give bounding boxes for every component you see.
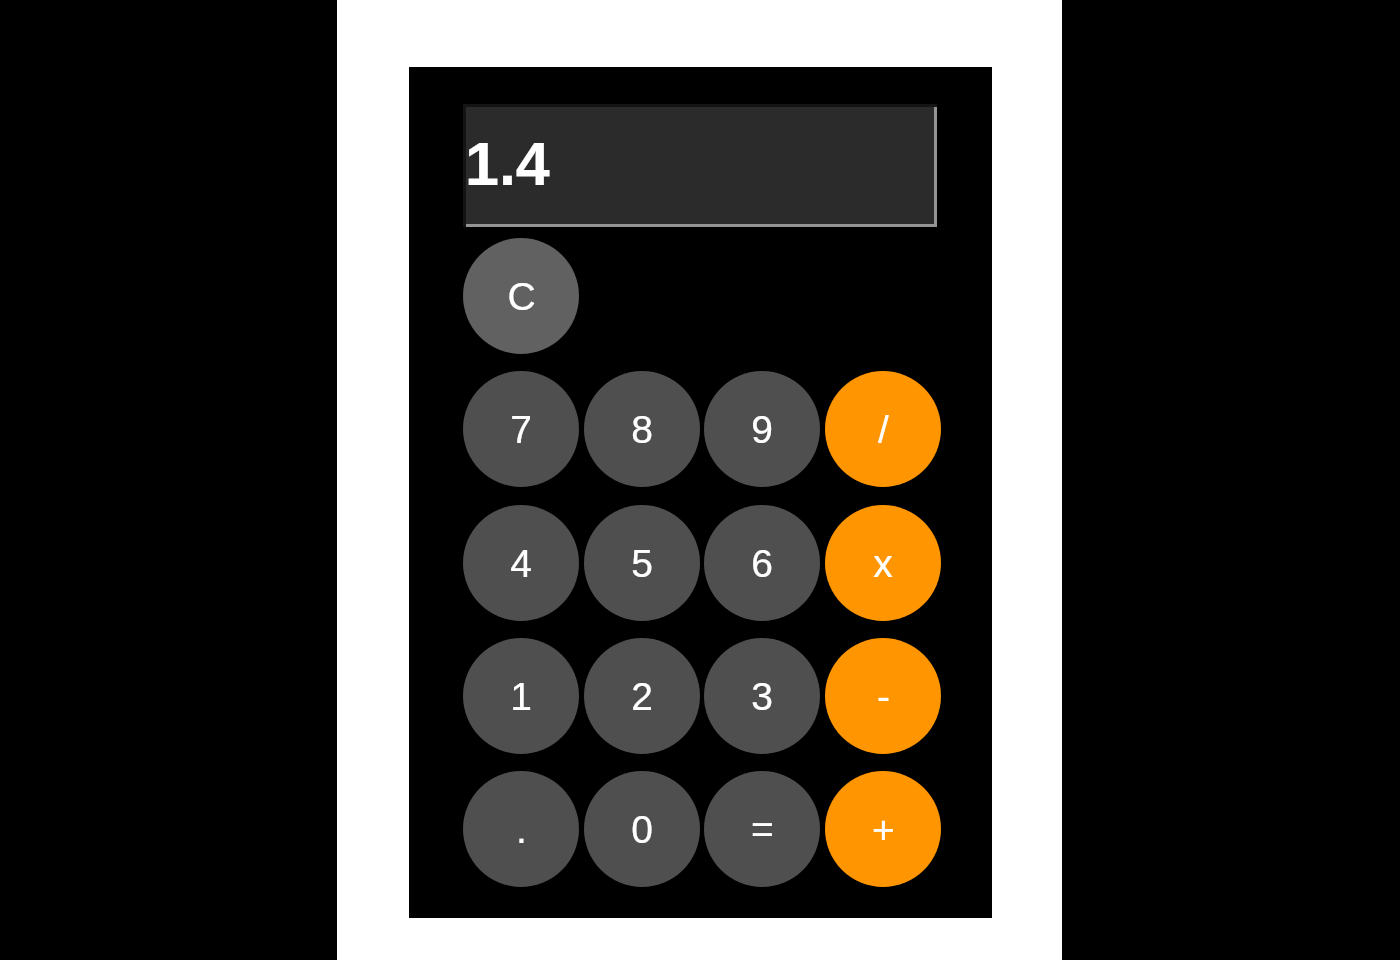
button[interactable]: - xyxy=(825,638,941,754)
staticText: 1.4 xyxy=(465,130,550,198)
button[interactable]: = xyxy=(704,771,820,887)
staticText: 0 xyxy=(631,808,653,852)
staticText: 9 xyxy=(751,408,773,452)
staticText: / xyxy=(878,408,889,452)
staticText: C xyxy=(507,275,536,319)
staticText: x xyxy=(873,542,893,586)
button[interactable]: x xyxy=(825,505,941,621)
button[interactable]: C xyxy=(463,238,579,354)
staticText: . xyxy=(516,808,527,852)
staticText: 2 xyxy=(631,675,653,719)
staticText: 7 xyxy=(510,408,532,452)
button[interactable]: / xyxy=(825,371,941,487)
button[interactable]: 9 xyxy=(704,371,820,487)
button[interactable]: 1 xyxy=(463,638,579,754)
staticText: 5 xyxy=(631,542,653,586)
button[interactable]: 6 xyxy=(704,505,820,621)
staticText: 6 xyxy=(751,542,773,586)
staticText: 3 xyxy=(751,675,773,719)
button[interactable]: + xyxy=(825,771,941,887)
button[interactable]: 7 xyxy=(463,371,579,487)
button[interactable]: 2 xyxy=(584,638,700,754)
button[interactable]: . xyxy=(463,771,579,887)
button[interactable]: 4 xyxy=(463,505,579,621)
staticText: 8 xyxy=(631,408,653,452)
staticText: + xyxy=(872,808,895,852)
button[interactable]: 5 xyxy=(584,505,700,621)
staticText: = xyxy=(751,808,774,852)
staticText: 1 xyxy=(510,675,532,719)
button[interactable]: 0 xyxy=(584,771,700,887)
button[interactable]: 8 xyxy=(584,371,700,487)
staticText: 4 xyxy=(510,542,532,586)
staticText: - xyxy=(877,675,890,719)
button[interactable]: 3 xyxy=(704,638,820,754)
